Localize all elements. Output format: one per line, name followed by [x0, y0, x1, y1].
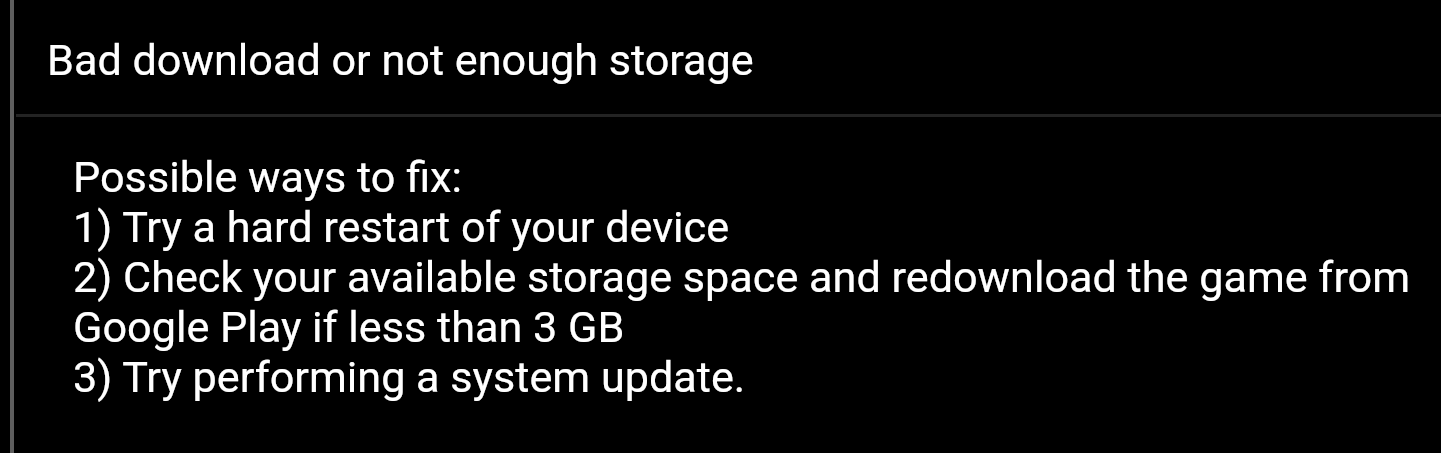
staticText: Bad download or not enough storage — [47, 35, 754, 86]
staticText: Possible ways to fix: 1) Try a hard rest… — [73, 152, 1411, 402]
button[interactable]: Bad download or not enough storage — [16, 0, 1441, 114]
button[interactable]: Possible ways to fix: 1) Try a hard rest… — [0, 117, 1441, 453]
